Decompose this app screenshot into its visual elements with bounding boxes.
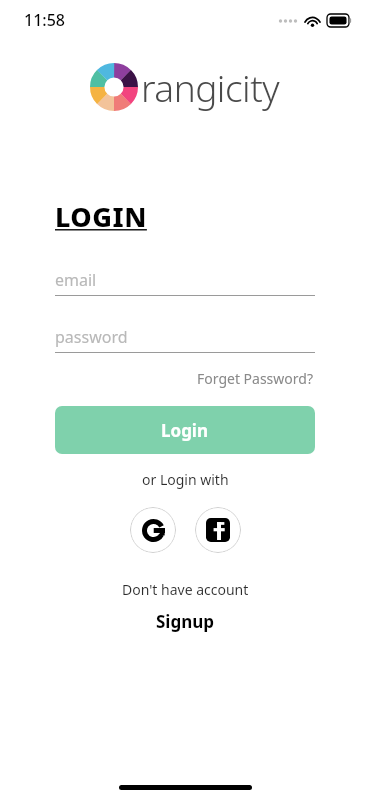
staticText: Login [161, 419, 209, 442]
button[interactable]: Forget Password? [195, 367, 315, 390]
button[interactable]: Sign in with Facebook [195, 507, 241, 553]
staticText: Signup [156, 610, 215, 633]
staticText: 11:58 [24, 9, 65, 31]
button[interactable]: Sign in with Google [130, 507, 176, 553]
staticText: Forget Password? [197, 369, 313, 388]
staticText: Don't have account [122, 580, 249, 599]
staticText: or Login with [142, 470, 229, 489]
button[interactable]: Signup [148, 607, 223, 636]
button[interactable]: email [55, 265, 315, 296]
staticText: password [55, 326, 128, 348]
staticText: rangicity [141, 62, 280, 112]
button[interactable]: password [55, 322, 315, 353]
staticText: email [55, 269, 97, 291]
staticText: LOGIN [55, 198, 147, 235]
button[interactable]: Login [55, 406, 315, 454]
